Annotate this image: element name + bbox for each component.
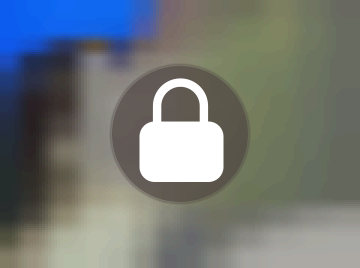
button[interactable]: Unlock: [108, 62, 252, 206]
